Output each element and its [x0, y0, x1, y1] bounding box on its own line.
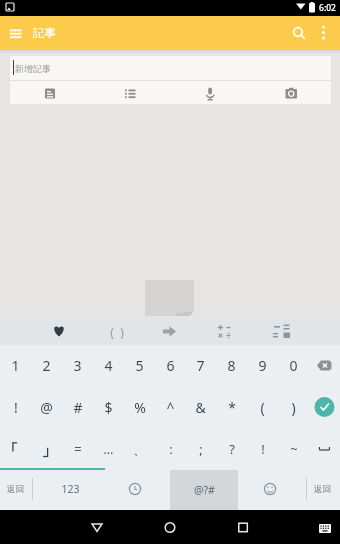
button[interactable]: ?	[216, 428, 247, 469]
button[interactable]: 5	[124, 345, 155, 386]
button[interactable]: !	[247, 428, 278, 469]
button[interactable]	[101, 318, 131, 345]
button[interactable]	[288, 22, 310, 44]
button[interactable]: 6	[155, 345, 186, 386]
button[interactable]	[210, 318, 238, 345]
button[interactable]: #	[62, 387, 93, 428]
staticText: ~	[290, 440, 298, 458]
button[interactable]	[309, 427, 340, 468]
staticText: !	[261, 440, 265, 458]
button[interactable]	[255, 470, 285, 510]
button[interactable]	[82, 512, 112, 542]
staticText: $	[104, 398, 113, 417]
staticText: @?#	[194, 483, 215, 497]
button[interactable]: 0	[278, 345, 309, 386]
button[interactable]: 4	[93, 345, 124, 386]
button[interactable]: 返回	[306, 469, 338, 509]
staticText: 、	[133, 441, 146, 457]
staticText: !	[14, 398, 18, 417]
button[interactable]	[309, 345, 340, 386]
staticText: 123	[61, 482, 80, 496]
button[interactable]	[118, 84, 142, 104]
button[interactable]: =	[62, 428, 93, 469]
button[interactable]: 新增記事	[10, 56, 331, 80]
button[interactable]: 7	[185, 345, 216, 386]
button[interactable]: :	[155, 428, 186, 469]
staticText: 1	[11, 356, 20, 375]
staticText: &	[195, 398, 206, 417]
staticText: @	[40, 398, 53, 417]
staticText: =	[74, 440, 82, 458]
button[interactable]: 8	[216, 345, 247, 386]
button[interactable]: 、	[124, 428, 155, 469]
button[interactable]: 1	[0, 345, 31, 386]
staticText: 9	[258, 356, 267, 375]
staticText: 3	[73, 356, 82, 375]
button[interactable]	[45, 318, 73, 345]
button[interactable]: (	[247, 387, 278, 428]
button[interactable]	[315, 515, 340, 541]
staticText: 返回	[314, 484, 331, 495]
staticText: #	[73, 398, 83, 417]
staticText: 新增記事	[15, 63, 51, 74]
button[interactable]	[198, 84, 222, 104]
staticText: ;	[199, 440, 203, 458]
button[interactable]: &	[185, 387, 216, 428]
button[interactable]: ;	[185, 428, 216, 469]
button[interactable]: …	[93, 428, 124, 469]
button[interactable]: 返回	[0, 469, 30, 509]
staticText: 5	[135, 356, 144, 375]
staticText: (	[260, 398, 265, 417]
staticText: (	[110, 324, 114, 340]
staticText: )	[291, 398, 296, 417]
staticText: *	[228, 398, 236, 417]
button[interactable]	[279, 84, 303, 104]
staticText: ^	[166, 398, 175, 417]
staticText: )	[120, 324, 124, 340]
staticText: ?	[229, 440, 235, 458]
button[interactable]: )	[278, 387, 309, 428]
button[interactable]: *	[216, 387, 247, 428]
button[interactable]: 9	[247, 345, 278, 386]
staticText: 6	[166, 356, 175, 375]
staticText: 2	[42, 356, 51, 375]
button[interactable]	[31, 427, 62, 468]
staticText: 返回	[7, 484, 24, 495]
staticText: 6:02	[319, 2, 336, 14]
button[interactable]	[313, 22, 335, 44]
button[interactable]: 123	[50, 469, 90, 509]
button[interactable]: 2	[31, 345, 62, 386]
button[interactable]: %	[124, 387, 155, 428]
button[interactable]	[155, 512, 185, 542]
button[interactable]: 3	[62, 345, 93, 386]
staticText: %	[134, 398, 146, 417]
button[interactable]	[269, 318, 297, 345]
staticText: 記事	[33, 26, 56, 40]
button[interactable]: !	[0, 387, 31, 428]
button[interactable]	[4, 23, 28, 43]
staticText: 8	[227, 356, 236, 375]
button[interactable]: @	[31, 387, 62, 428]
staticText: 7	[196, 356, 205, 375]
button[interactable]	[309, 386, 340, 427]
staticText: :	[169, 440, 173, 458]
staticText: 0	[289, 356, 298, 375]
button[interactable]: $	[93, 387, 124, 428]
button[interactable]	[156, 318, 184, 345]
staticText: 4	[104, 356, 113, 375]
button[interactable]: @?#	[170, 470, 238, 510]
button[interactable]	[38, 84, 62, 104]
button[interactable]: ^	[155, 387, 186, 428]
button[interactable]: ~	[278, 428, 309, 469]
button[interactable]	[0, 427, 31, 468]
staticText: …	[103, 440, 114, 458]
button[interactable]	[228, 512, 258, 542]
button[interactable]	[120, 470, 150, 510]
